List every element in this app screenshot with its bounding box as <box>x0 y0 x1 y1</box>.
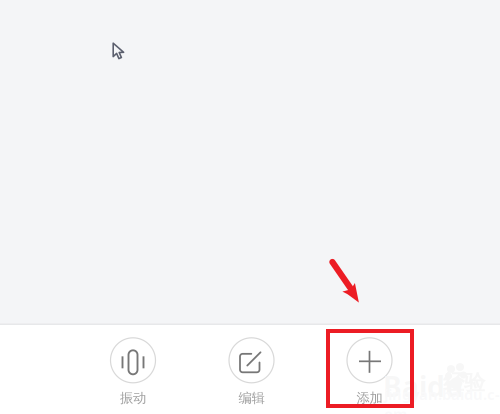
staticText: 经验 <box>443 369 485 396</box>
staticText: 编辑 <box>238 390 264 406</box>
staticText: jingyan.baidu.com <box>384 384 500 414</box>
button[interactable]: 振动 <box>87 335 179 409</box>
button[interactable]: 编辑 <box>205 335 297 409</box>
button[interactable]: 添加 <box>323 335 415 409</box>
staticText: 添加 <box>356 390 382 406</box>
staticText: 振动 <box>120 390 146 406</box>
staticText: Baidu <box>383 367 463 405</box>
